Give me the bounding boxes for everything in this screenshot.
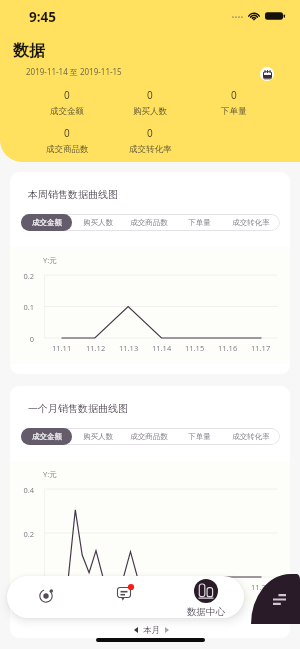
staticText: 0 bbox=[64, 126, 70, 140]
button[interactable]: 成交商品数 bbox=[123, 428, 174, 445]
button[interactable]: Pick date range bbox=[260, 67, 274, 81]
staticText: 2019-11-14 至 2019-11-15 bbox=[26, 66, 122, 77]
staticText: 9:45 bbox=[29, 8, 56, 26]
staticText: 11.13 bbox=[119, 343, 139, 353]
staticText: 下单量 bbox=[188, 218, 211, 227]
staticText: 0 bbox=[231, 88, 237, 102]
button[interactable]: 成交金额 bbox=[21, 214, 72, 231]
staticText: 下单量 bbox=[188, 432, 211, 441]
staticText: 11.16 bbox=[218, 343, 238, 353]
button[interactable]: Next month bbox=[160, 622, 174, 638]
button[interactable]: 数据中心 bbox=[183, 579, 228, 618]
button[interactable]: 购买人数 bbox=[72, 428, 123, 445]
staticText: 成交金额 bbox=[32, 432, 62, 441]
button[interactable]: Menu bbox=[251, 574, 300, 624]
staticText: 0.2 bbox=[17, 271, 34, 281]
staticText: 一个月销售数据曲线图 bbox=[28, 402, 128, 415]
staticText: 0 bbox=[147, 126, 153, 140]
staticText: 成交转化率 bbox=[129, 144, 172, 155]
staticText: 数据 bbox=[13, 41, 45, 61]
button[interactable]: Discover bbox=[33, 583, 58, 608]
staticText: 购买人数 bbox=[83, 218, 113, 227]
staticText: 0.2 bbox=[17, 529, 34, 539]
staticText: 0 bbox=[17, 334, 34, 344]
button[interactable]: 成交转化率 bbox=[225, 214, 276, 231]
button[interactable]: 成交转化率 bbox=[225, 428, 276, 445]
staticText: 成交转化率 bbox=[232, 218, 270, 227]
staticText: 11.12 bbox=[86, 343, 106, 353]
button[interactable]: 购买人数 bbox=[72, 214, 123, 231]
staticText: 本月 bbox=[143, 625, 160, 636]
button[interactable]: Previous month bbox=[129, 622, 143, 638]
button[interactable]: 下单量 bbox=[174, 428, 225, 445]
staticText: 成交商品数 bbox=[130, 432, 168, 441]
staticText: 成交商品数 bbox=[130, 218, 168, 227]
staticText: 11.15 bbox=[185, 343, 205, 353]
staticText: 成交金额 bbox=[50, 106, 84, 117]
staticText: 成交商品数 bbox=[46, 144, 89, 155]
staticText: 0 bbox=[17, 573, 34, 583]
staticText: 购买人数 bbox=[83, 432, 113, 441]
staticText: 0 bbox=[64, 88, 70, 102]
staticText: 0.1 bbox=[17, 302, 34, 312]
staticText: 0 bbox=[147, 88, 153, 102]
staticText: 0.4 bbox=[17, 485, 34, 495]
staticText: 11.20 bbox=[185, 582, 205, 592]
staticText: 成交转化率 bbox=[232, 432, 270, 441]
button[interactable]: Messages bbox=[113, 582, 138, 607]
staticText: 11.17 bbox=[251, 343, 271, 353]
staticText: 11.30 bbox=[251, 582, 271, 592]
button[interactable]: 成交金额 bbox=[21, 428, 72, 445]
staticText: 下单量 bbox=[221, 106, 247, 117]
staticText: Y:元 bbox=[43, 255, 57, 265]
staticText: 数据中心 bbox=[187, 606, 225, 618]
button[interactable]: 成交商品数 bbox=[123, 214, 174, 231]
staticText: 本周销售数据曲线图 bbox=[28, 188, 118, 201]
staticText: 购买人数 bbox=[133, 106, 167, 117]
staticText: 11.11 bbox=[52, 343, 72, 353]
staticText: 成交金额 bbox=[32, 218, 62, 227]
staticText: 11.10 bbox=[119, 582, 139, 592]
staticText: Y:元 bbox=[43, 469, 57, 479]
staticText: 11.14 bbox=[152, 343, 172, 353]
button[interactable]: 下单量 bbox=[174, 214, 225, 231]
